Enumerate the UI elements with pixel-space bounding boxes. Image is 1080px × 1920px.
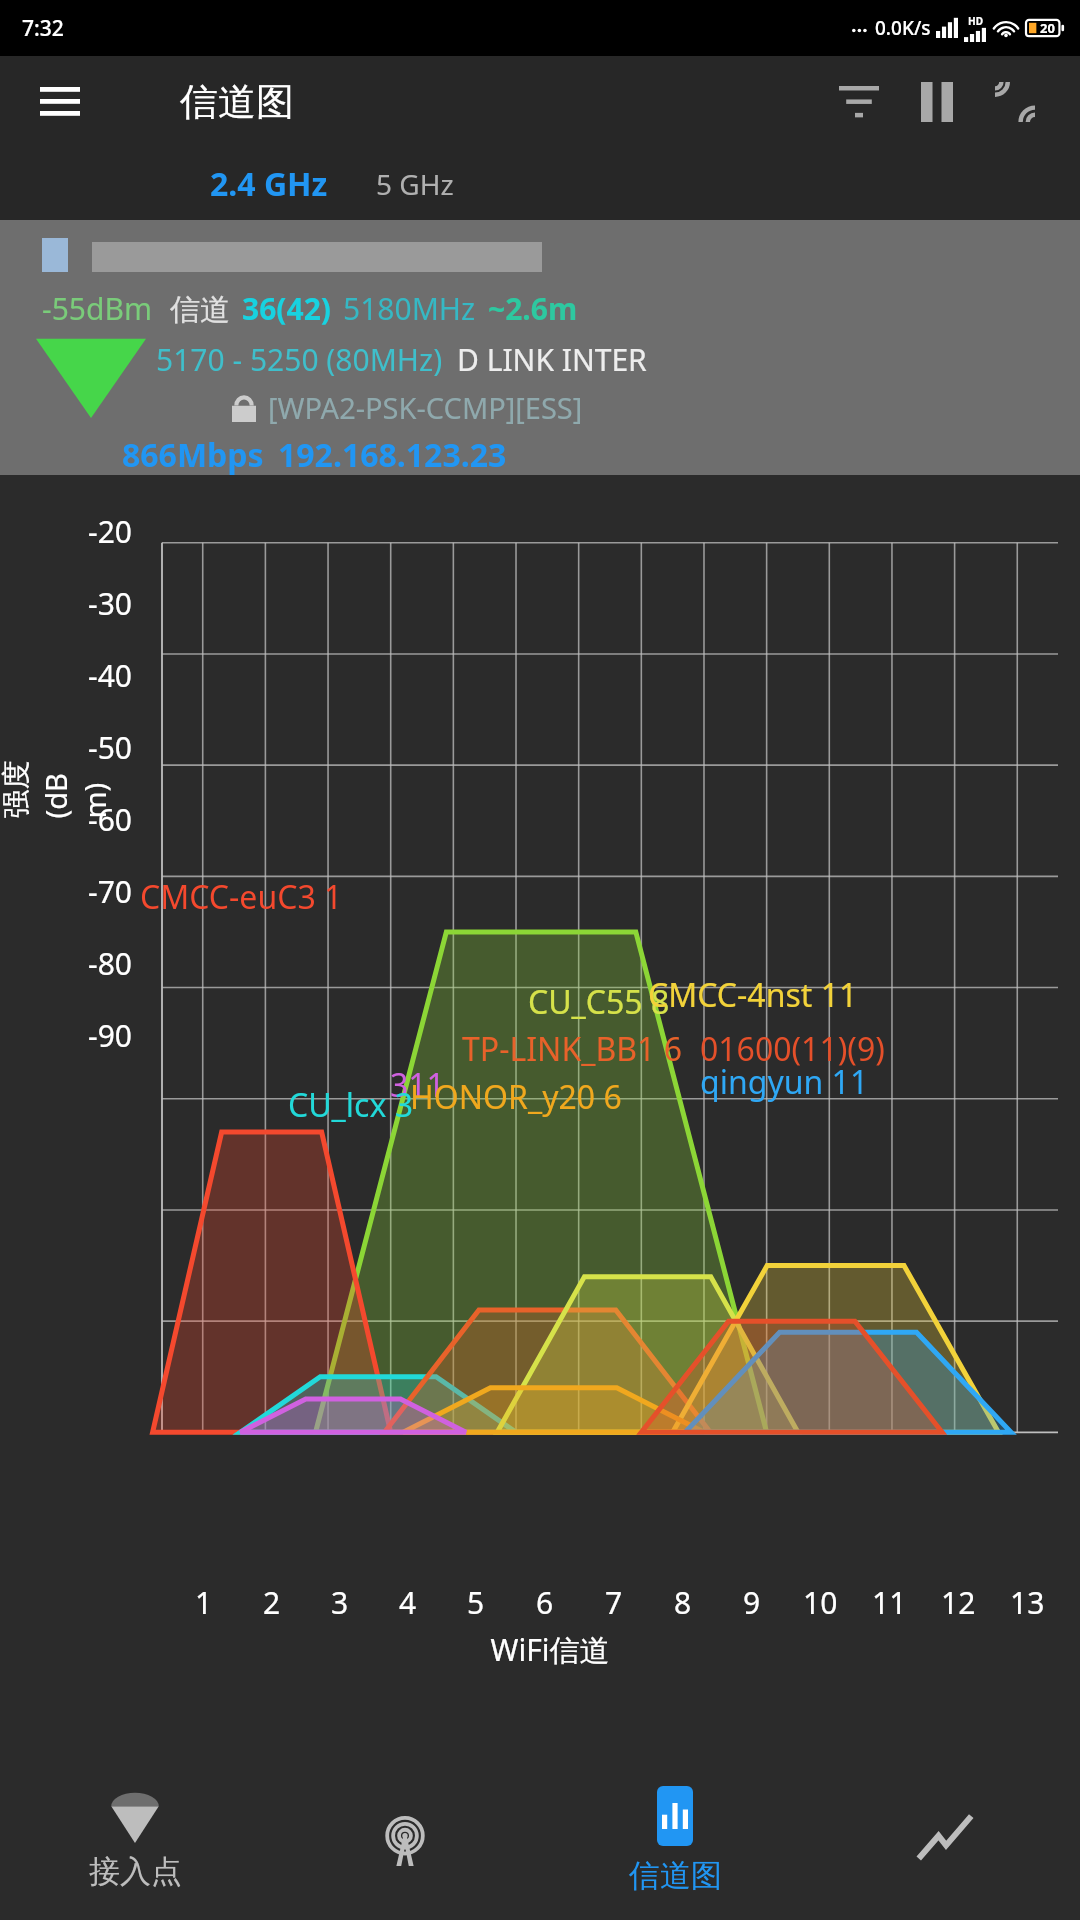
staticText: 信道图 xyxy=(629,1856,722,1895)
staticText: 192.168.123.23 xyxy=(278,433,507,475)
staticText: 接入点 xyxy=(89,1852,182,1891)
staticText: qingyun 11 xyxy=(700,1060,869,1104)
staticText: 1 xyxy=(195,1582,213,1623)
button[interactable]: Wi-Fi band xyxy=(976,63,1054,141)
staticText: 3 xyxy=(331,1582,349,1623)
staticText: HONOR_y20 6 xyxy=(410,1075,622,1119)
staticText: 866Mbps xyxy=(122,433,264,475)
staticText: -55dBm xyxy=(42,288,152,329)
button[interactable]: Menu xyxy=(34,76,86,128)
button[interactable]: -55dBm xyxy=(0,220,1080,475)
staticText: CU_C55 8 xyxy=(528,980,670,1024)
staticText: 4 xyxy=(399,1582,417,1623)
staticText: 311 xyxy=(390,1063,445,1107)
staticText: -20 xyxy=(88,511,132,552)
staticText: 01600(11)(9) xyxy=(700,1027,885,1071)
staticText: 信号强度 (dBm) xyxy=(0,748,113,818)
button[interactable]: Tab xyxy=(810,1760,1080,1920)
staticText: 5170 - 5250 (80MHz) xyxy=(156,339,443,380)
staticText: 2.4 GHz xyxy=(210,162,328,206)
staticText: CMCC-4nst 11 xyxy=(648,973,858,1017)
staticText: -40 xyxy=(88,655,132,696)
button[interactable]: 信道图 xyxy=(540,1760,810,1920)
button[interactable]: 接入点 xyxy=(0,1760,270,1920)
staticText: ~2.6m xyxy=(488,288,578,329)
staticText: -50 xyxy=(88,727,132,768)
staticText: 12 xyxy=(941,1582,976,1623)
staticText: CU_lcx 3 xyxy=(288,1083,413,1127)
staticText: 5180MHz xyxy=(343,288,476,329)
staticText: 11 xyxy=(872,1582,907,1623)
staticText: 5 GHz xyxy=(376,165,454,203)
staticText: D LINK INTER xyxy=(457,339,647,380)
staticText: 10 xyxy=(803,1582,838,1623)
staticText: 2 xyxy=(263,1582,281,1623)
staticText: 5 xyxy=(467,1582,485,1623)
staticText: TP-LINK_BB1 6 xyxy=(462,1027,682,1071)
staticText: 6 xyxy=(536,1582,554,1623)
staticText: -80 xyxy=(88,943,132,984)
button[interactable]: 5 GHz xyxy=(376,165,454,203)
button[interactable]: 2.4 GHz xyxy=(210,162,328,206)
staticText: 36(42) xyxy=(242,288,331,329)
staticText: 13 xyxy=(1010,1582,1045,1623)
staticText: 8 xyxy=(674,1582,692,1623)
staticText: WiFi信道 xyxy=(20,1629,1080,1670)
staticText: -90 xyxy=(88,1015,132,1056)
button[interactable]: Filter xyxy=(820,63,898,141)
staticText: HD xyxy=(968,14,983,28)
staticText: 信道图 xyxy=(180,78,294,126)
staticText: 信道 xyxy=(170,291,230,329)
staticText: 20 xyxy=(1040,19,1055,37)
staticText: -30 xyxy=(88,583,132,624)
staticText: CMCC-euC3 1 xyxy=(140,875,343,919)
staticText: 9 xyxy=(743,1582,761,1623)
staticText: -70 xyxy=(88,871,132,912)
staticText: 7 xyxy=(605,1582,623,1623)
staticText: 0.0K/s xyxy=(875,15,931,41)
button[interactable]: Tab xyxy=(270,1760,540,1920)
staticText: [WPA2-PSK-CCMP][ESS] xyxy=(268,388,583,427)
button[interactable]: Pause xyxy=(898,63,976,141)
staticText: -60 xyxy=(88,799,132,840)
staticText: 7:32 xyxy=(22,14,64,43)
